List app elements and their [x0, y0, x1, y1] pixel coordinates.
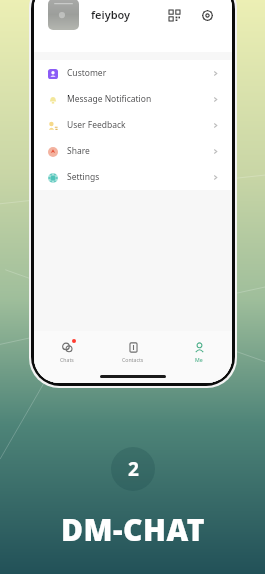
button[interactable]: Settings	[196, 4, 218, 26]
staticText: User Feedback	[67, 119, 126, 131]
button[interactable]: Me	[166, 338, 232, 365]
button[interactable]: Settings	[34, 164, 232, 190]
staticText: Message Notification	[67, 93, 152, 105]
staticText: Me	[195, 356, 203, 363]
button[interactable]: Message Notification	[34, 86, 232, 112]
staticText: 2	[128, 456, 139, 482]
button[interactable]: Chats	[34, 338, 100, 365]
button[interactable]	[48, 0, 79, 30]
button[interactable]: User Feedback	[34, 112, 232, 138]
staticText: Contacts	[122, 356, 144, 363]
staticText: feiyboy	[91, 7, 131, 22]
staticText: Settings	[67, 171, 100, 183]
button[interactable]: Contacts	[100, 338, 166, 365]
button[interactable]: Scan QR code	[163, 4, 185, 26]
staticText: Share	[67, 145, 90, 157]
button[interactable]: Customer	[34, 60, 232, 86]
staticText: Customer	[67, 67, 107, 79]
staticText: DM-CHAT	[61, 509, 205, 550]
staticText: Chats	[60, 356, 74, 363]
button[interactable]: Share	[34, 138, 232, 164]
